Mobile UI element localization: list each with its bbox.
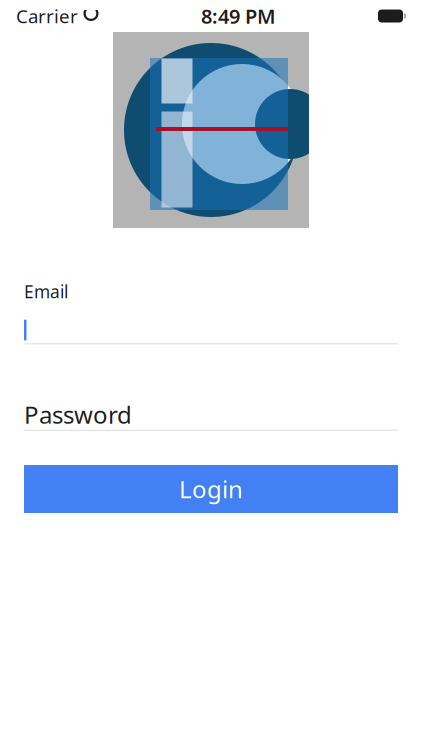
button[interactable]: Login bbox=[24, 465, 398, 513]
staticText: 8:49 PM bbox=[201, 3, 276, 29]
staticText: Email bbox=[24, 280, 68, 303]
staticText: Password bbox=[24, 399, 132, 430]
button[interactable]: Password bbox=[24, 399, 398, 429]
staticText: Login bbox=[179, 473, 243, 505]
staticText: Carrier bbox=[16, 4, 78, 28]
button[interactable]: Email text field bbox=[24, 317, 398, 343]
